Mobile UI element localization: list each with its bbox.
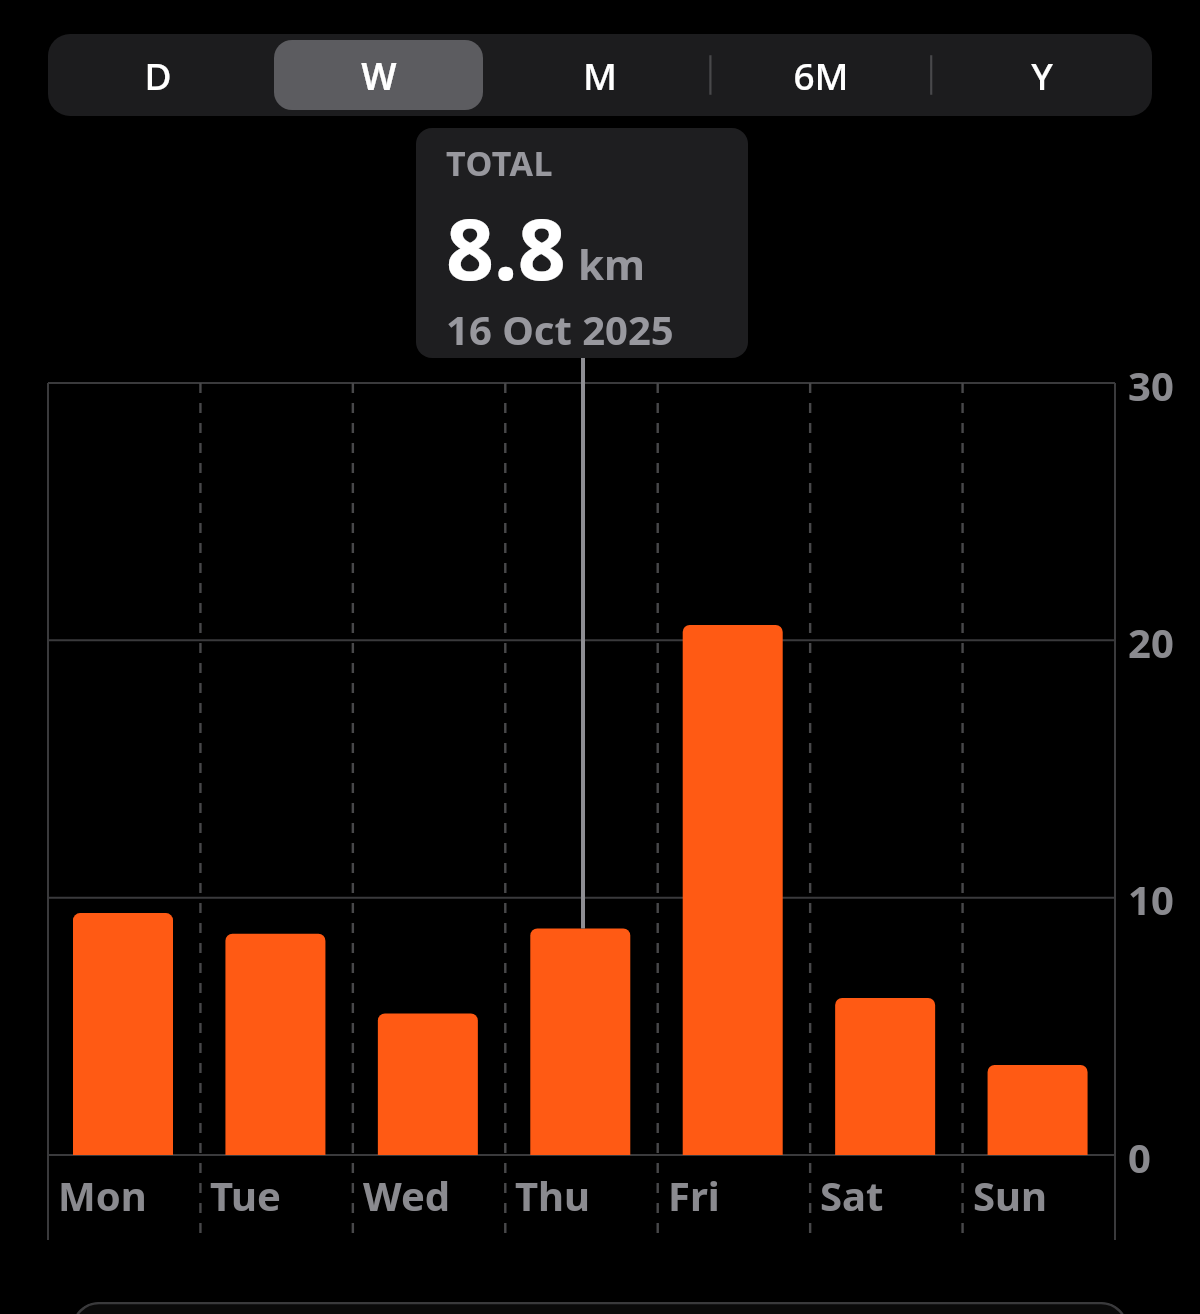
staticText: Tue <box>210 1168 281 1222</box>
staticText: 30 <box>1128 358 1174 412</box>
button[interactable]: M <box>495 40 704 110</box>
staticText: 20 <box>1128 615 1174 669</box>
staticText: 8.8 <box>446 190 566 304</box>
button[interactable]: 6M <box>716 40 925 110</box>
button[interactable]: TOTAL <box>416 128 748 358</box>
staticText: M <box>583 50 617 100</box>
staticText: Y <box>1031 50 1053 100</box>
staticText: 6M <box>793 50 849 100</box>
staticText: Mon <box>58 1168 147 1222</box>
button[interactable]: W <box>274 40 483 110</box>
staticText: Sat <box>820 1168 884 1222</box>
staticText: km <box>578 235 645 292</box>
staticText: 0 <box>1128 1130 1151 1184</box>
staticText: 10 <box>1128 872 1174 926</box>
staticText: W <box>361 50 397 100</box>
button[interactable]: D <box>54 40 262 110</box>
staticText: Fri <box>668 1168 720 1222</box>
staticText: Wed <box>363 1168 451 1222</box>
button[interactable] <box>72 1302 1128 1314</box>
staticText: D <box>144 50 172 100</box>
staticText: 16 Oct 2025 <box>446 302 674 356</box>
staticText: TOTAL <box>446 140 554 186</box>
staticText: Thu <box>515 1168 591 1222</box>
staticText: Sun <box>973 1168 1048 1222</box>
button[interactable]: Y <box>937 40 1146 110</box>
